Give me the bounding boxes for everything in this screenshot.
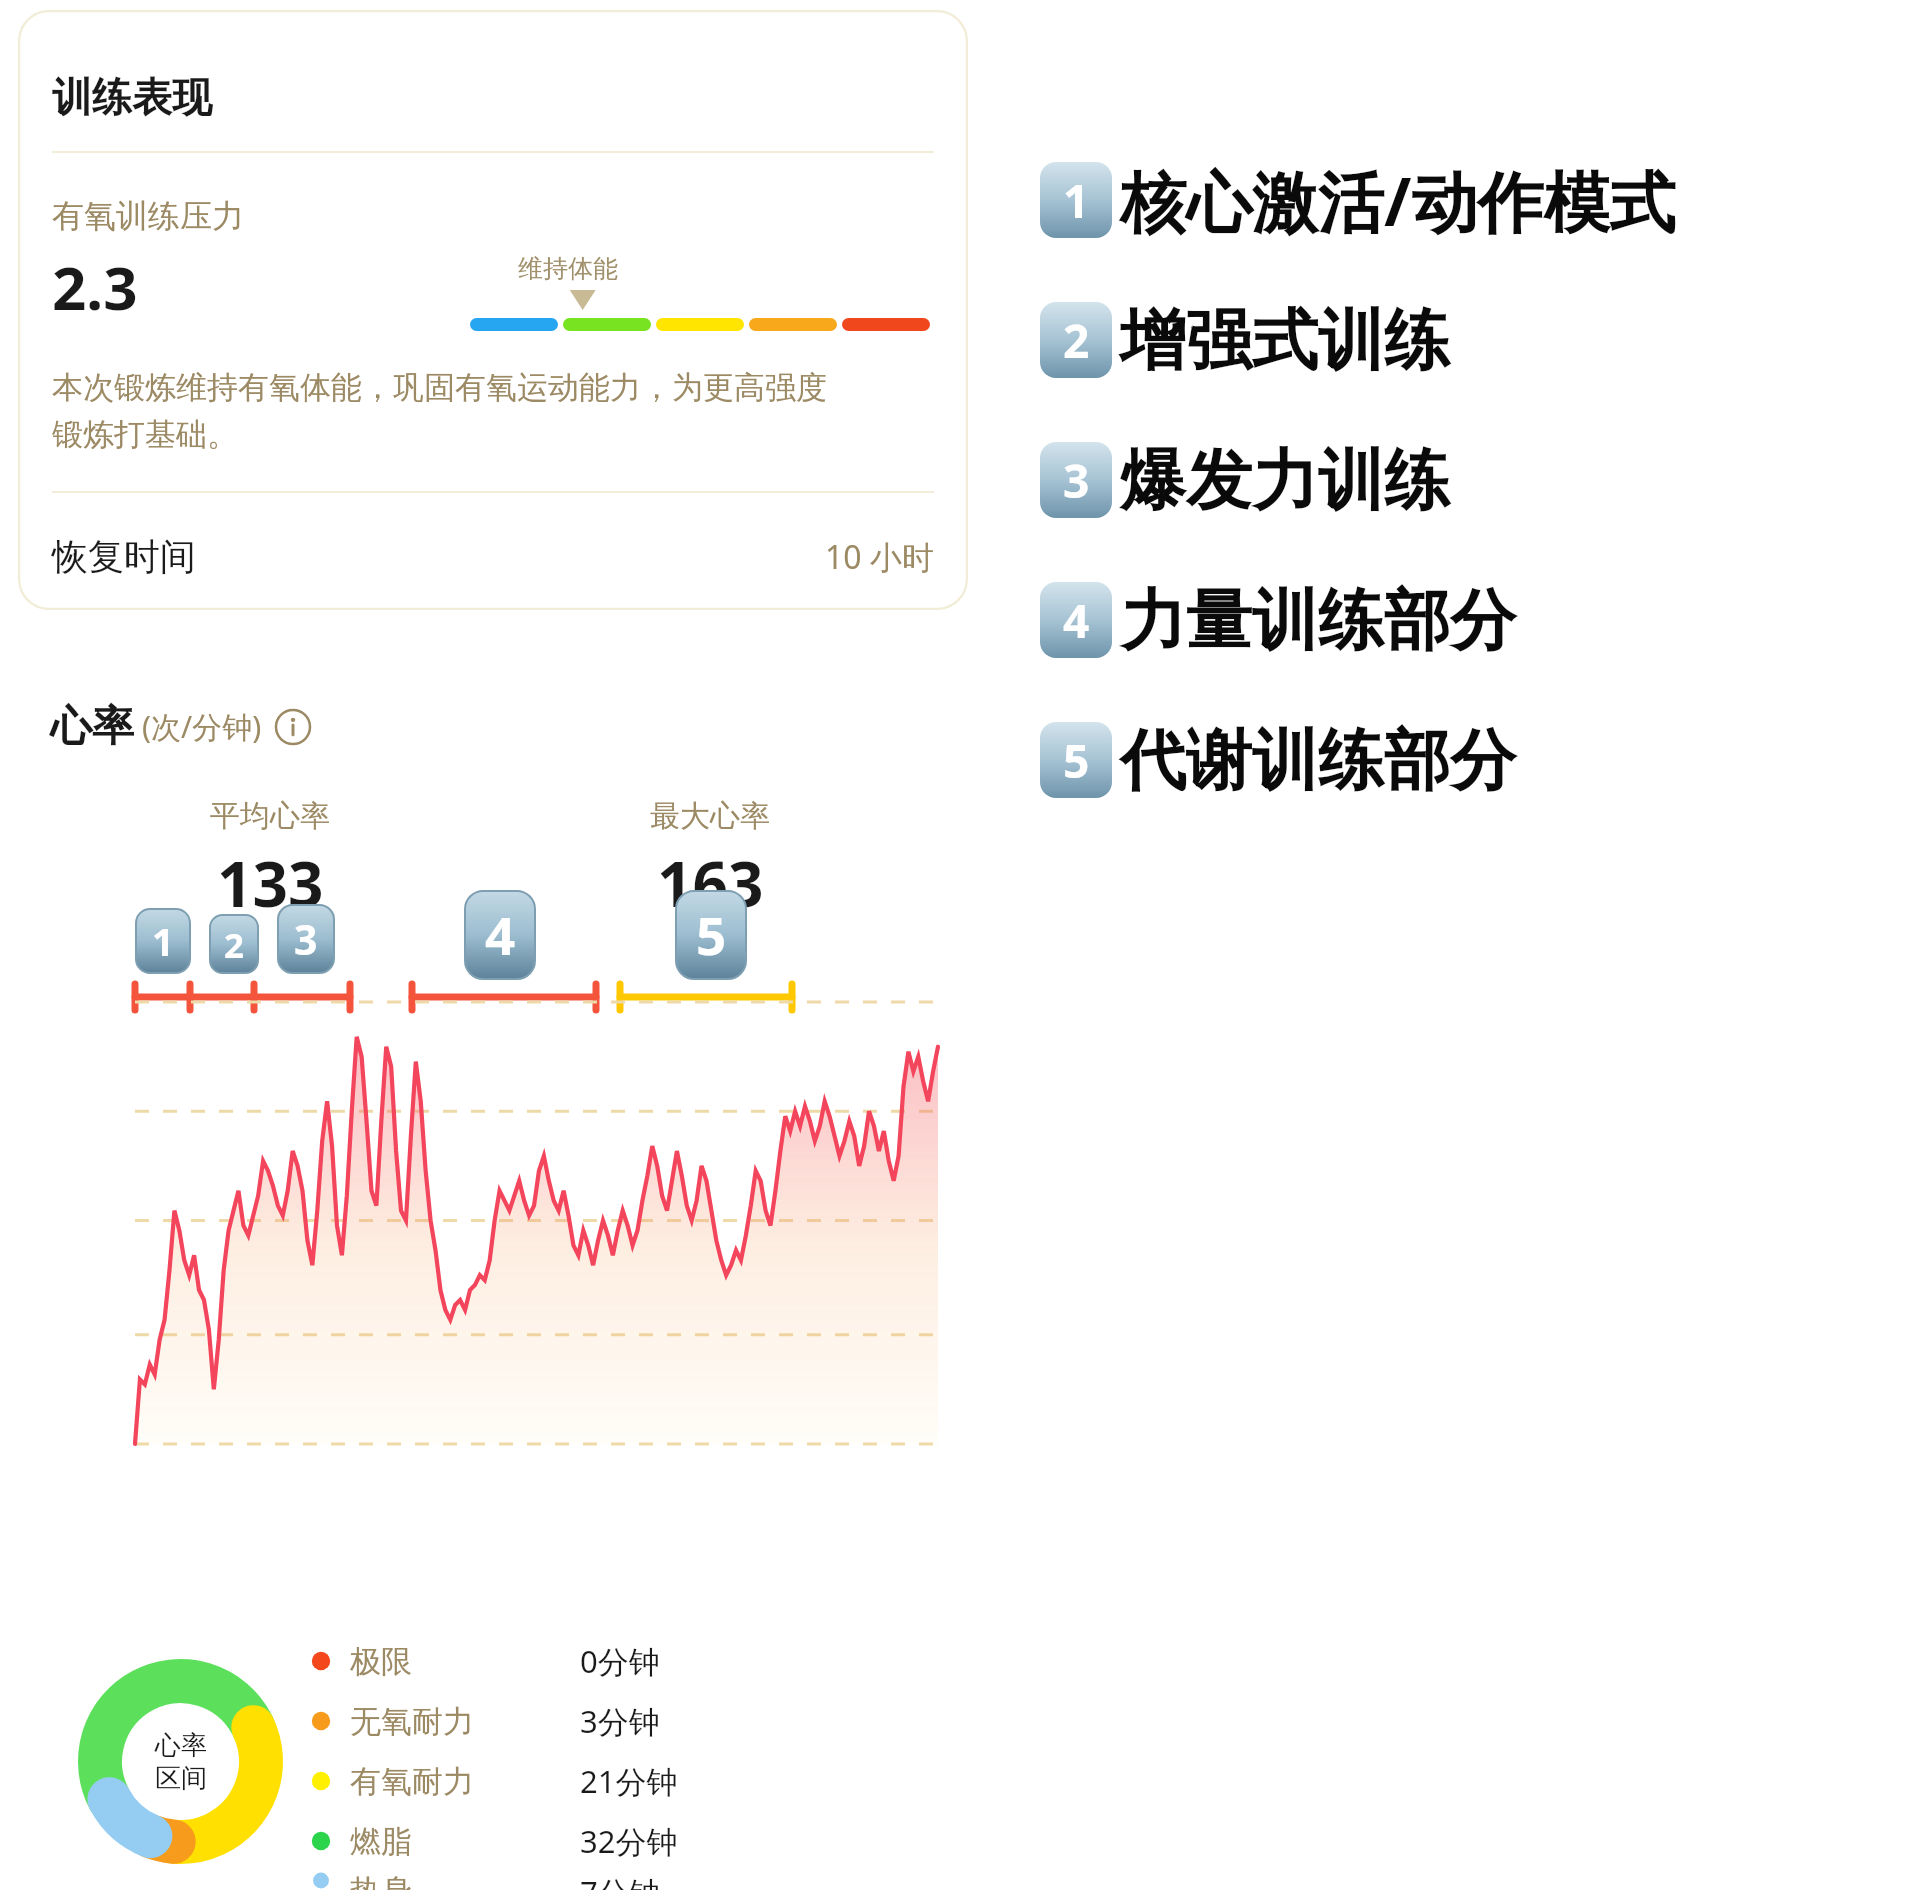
staticText: 3分钟 <box>580 1700 660 1742</box>
button[interactable]: 有氧耐力 <box>310 1751 950 1811</box>
button[interactable]: 极限 <box>310 1631 950 1691</box>
staticText: 代谢训练部分 <box>1120 719 1516 802</box>
staticText: 4 <box>1063 589 1090 652</box>
button[interactable]: 3 <box>278 905 334 973</box>
staticText: 有氧训练压力 <box>52 196 244 236</box>
staticText: 训练表现 <box>52 72 212 122</box>
button[interactable]: 无氧耐力 <box>310 1691 950 1751</box>
staticText: 最大心率 <box>650 797 770 835</box>
staticText: 热身 <box>350 1871 412 1890</box>
staticText: 1 <box>1063 169 1090 232</box>
staticText: 平均心率 <box>210 797 330 835</box>
button[interactable]: 训练表现 <box>18 10 968 610</box>
staticText: 0分钟 <box>580 1640 660 1682</box>
button[interactable]: 3 <box>1040 410 1450 550</box>
button[interactable]: 1 <box>136 909 190 973</box>
button[interactable]: 2 <box>1040 270 1450 410</box>
staticText: 心率 <box>50 700 134 753</box>
staticText: 133 <box>217 841 324 925</box>
staticText: (次/分钟) <box>142 706 262 747</box>
staticText: 心率 <box>155 1729 207 1762</box>
button[interactable]: 2 <box>210 915 258 973</box>
button[interactable]: 4 <box>465 891 535 979</box>
staticText: 2 <box>224 921 244 968</box>
button[interactable]: 热身 <box>310 1871 950 1890</box>
staticText: 增强式训练 <box>1120 299 1450 382</box>
button[interactable]: 5 <box>1040 690 1516 830</box>
staticText: 燃脂 <box>350 1822 412 1861</box>
staticText: 32分钟 <box>580 1820 678 1862</box>
button[interactable]: 5 <box>676 891 746 979</box>
staticText: 力量训练部分 <box>1120 579 1516 662</box>
staticText: 爆发力训练 <box>1120 439 1450 522</box>
staticText: 10 小时 <box>825 535 934 579</box>
staticText: 21分钟 <box>580 1760 678 1802</box>
staticText: 有氧耐力 <box>350 1762 474 1801</box>
staticText: 核心激活/动作模式 <box>1120 155 1676 245</box>
staticText: 本次锻炼维持有氧体能，巩固有氧运动能力，为更高强度 锻炼打基础。 <box>52 368 827 454</box>
staticText: 无氧耐力 <box>350 1702 474 1741</box>
button[interactable]: 4 <box>1040 550 1516 690</box>
staticText: 4 <box>485 899 516 971</box>
button[interactable]: 1 <box>1040 130 1676 270</box>
staticText: 3 <box>294 911 318 967</box>
staticText: 恢复时间 <box>52 534 196 579</box>
button[interactable]: 信息 <box>274 708 312 746</box>
staticText: 5 <box>1063 729 1090 792</box>
staticText: 7分钟 <box>580 1871 660 1890</box>
staticText: 2.3 <box>52 246 138 328</box>
staticText: 2 <box>1063 309 1090 372</box>
staticText: 3 <box>1063 449 1090 512</box>
staticText: 1 <box>152 915 174 967</box>
staticText: 极限 <box>350 1642 412 1681</box>
staticText: 163 <box>657 841 764 925</box>
staticText: 5 <box>696 899 727 971</box>
button[interactable]: 燃脂 <box>310 1811 950 1871</box>
staticText: 区间 <box>155 1762 207 1795</box>
staticText: 维持体能 <box>518 253 618 284</box>
